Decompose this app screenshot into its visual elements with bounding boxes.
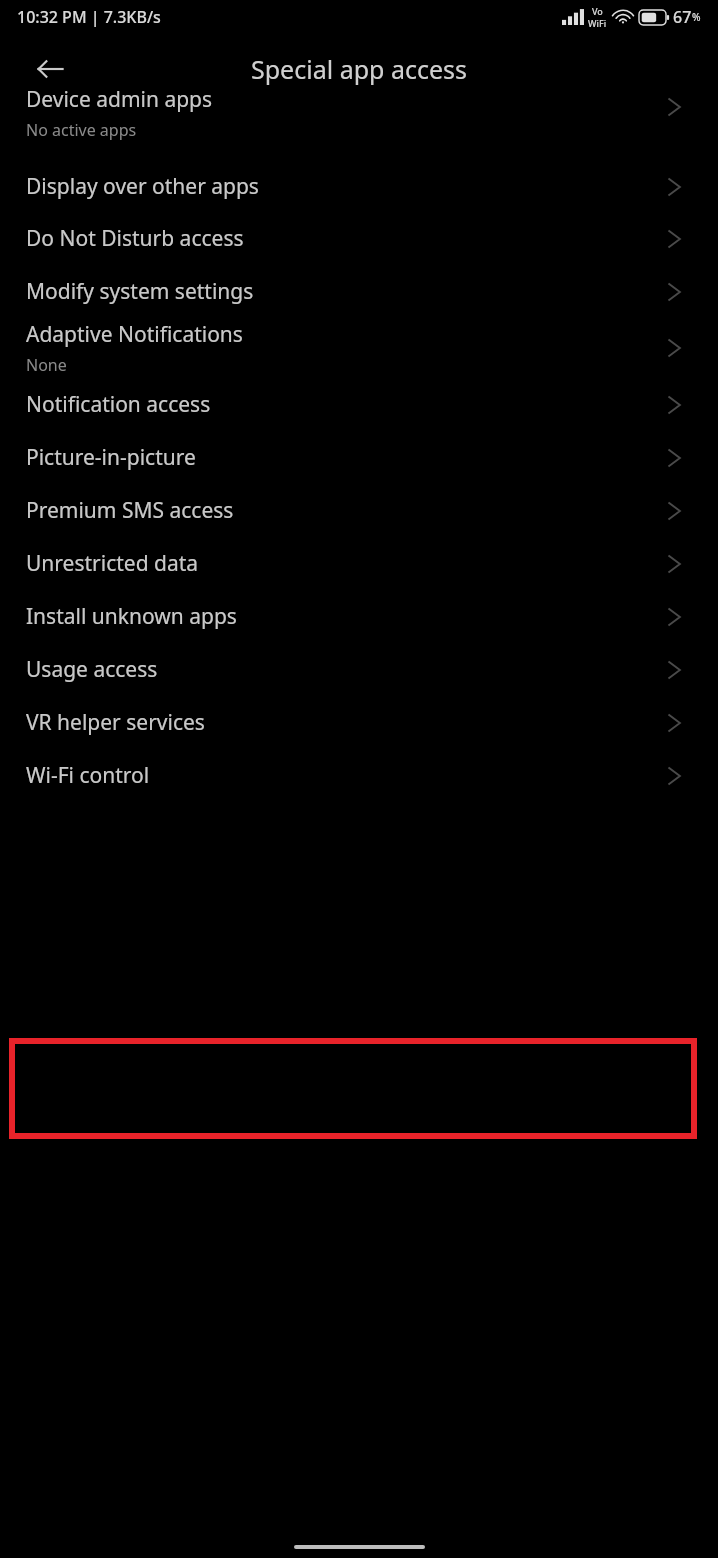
button[interactable]: Display over other apps	[0, 161, 718, 212]
staticText: 10:32 PM | 7.3KB/s	[17, 6, 161, 28]
staticText: Install unknown apps	[26, 602, 660, 631]
staticText: Wi-Fi control	[26, 761, 150, 790]
button[interactable]: Wi-Fi control	[0, 749, 718, 802]
staticText: Usage access	[26, 655, 158, 684]
staticText: Adaptive Notifications	[26, 320, 243, 349]
staticText: Display over other apps	[26, 172, 259, 201]
button[interactable]: Usage access	[0, 643, 718, 696]
staticText: %	[692, 10, 701, 24]
staticText: Picture-in-picture	[26, 443, 196, 472]
button[interactable]: Back	[29, 48, 71, 90]
staticText: Unrestricted data	[26, 549, 199, 578]
button[interactable]: Picture-in-picture	[0, 431, 718, 484]
staticText: None	[26, 354, 67, 376]
staticText: WiFi	[588, 17, 607, 29]
staticText: 67	[673, 6, 692, 28]
staticText: Device admin apps	[26, 85, 213, 114]
button[interactable]: Modify system settings	[0, 265, 718, 318]
button[interactable]: Unrestricted data	[0, 537, 718, 590]
button[interactable]: Device admin apps	[0, 105, 718, 161]
staticText: Premium SMS access	[26, 496, 234, 525]
staticText: Vo	[592, 5, 603, 17]
button[interactable]: Do Not Disturb access	[0, 212, 718, 265]
staticText: Notification access	[26, 390, 211, 419]
staticText: Do Not Disturb access	[26, 224, 244, 253]
button[interactable]: Notification access	[0, 378, 718, 431]
button[interactable]: Install unknown apps	[0, 590, 718, 643]
staticText: VR helper services	[26, 708, 205, 737]
staticText: Modify system settings	[26, 277, 254, 306]
button[interactable]: Premium SMS access	[0, 484, 718, 537]
button[interactable]: Adaptive Notifications	[0, 318, 718, 378]
staticText: No active apps	[26, 119, 137, 141]
staticText: Special app access	[251, 52, 467, 86]
button[interactable]: VR helper services	[0, 696, 718, 749]
